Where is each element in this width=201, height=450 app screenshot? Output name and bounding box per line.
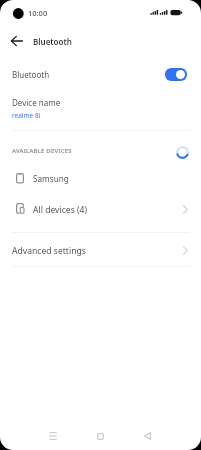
button[interactable]: Device name [0,90,201,128]
staticText: Bluetooth [12,69,50,80]
button[interactable] [39,423,67,449]
staticText: AVAILABLE DEVICES [12,147,72,155]
staticText: Device name [12,97,61,108]
button[interactable]: Bluetooth [0,58,201,90]
staticText: All devices (4) [33,204,88,216]
staticText: 10:00 [28,8,48,18]
button[interactable]: All devices (4) [0,195,201,224]
staticText: Bluetooth [33,36,72,47]
staticText: Samsung [33,173,69,184]
button[interactable]: Samsung [0,164,201,193]
button[interactable] [6,30,28,52]
staticText: Advanced settings [12,245,86,257]
button[interactable] [133,423,161,449]
staticText: realme 8i [12,111,41,120]
button[interactable]: Advanced settings [0,236,201,265]
button[interactable] [86,423,114,449]
